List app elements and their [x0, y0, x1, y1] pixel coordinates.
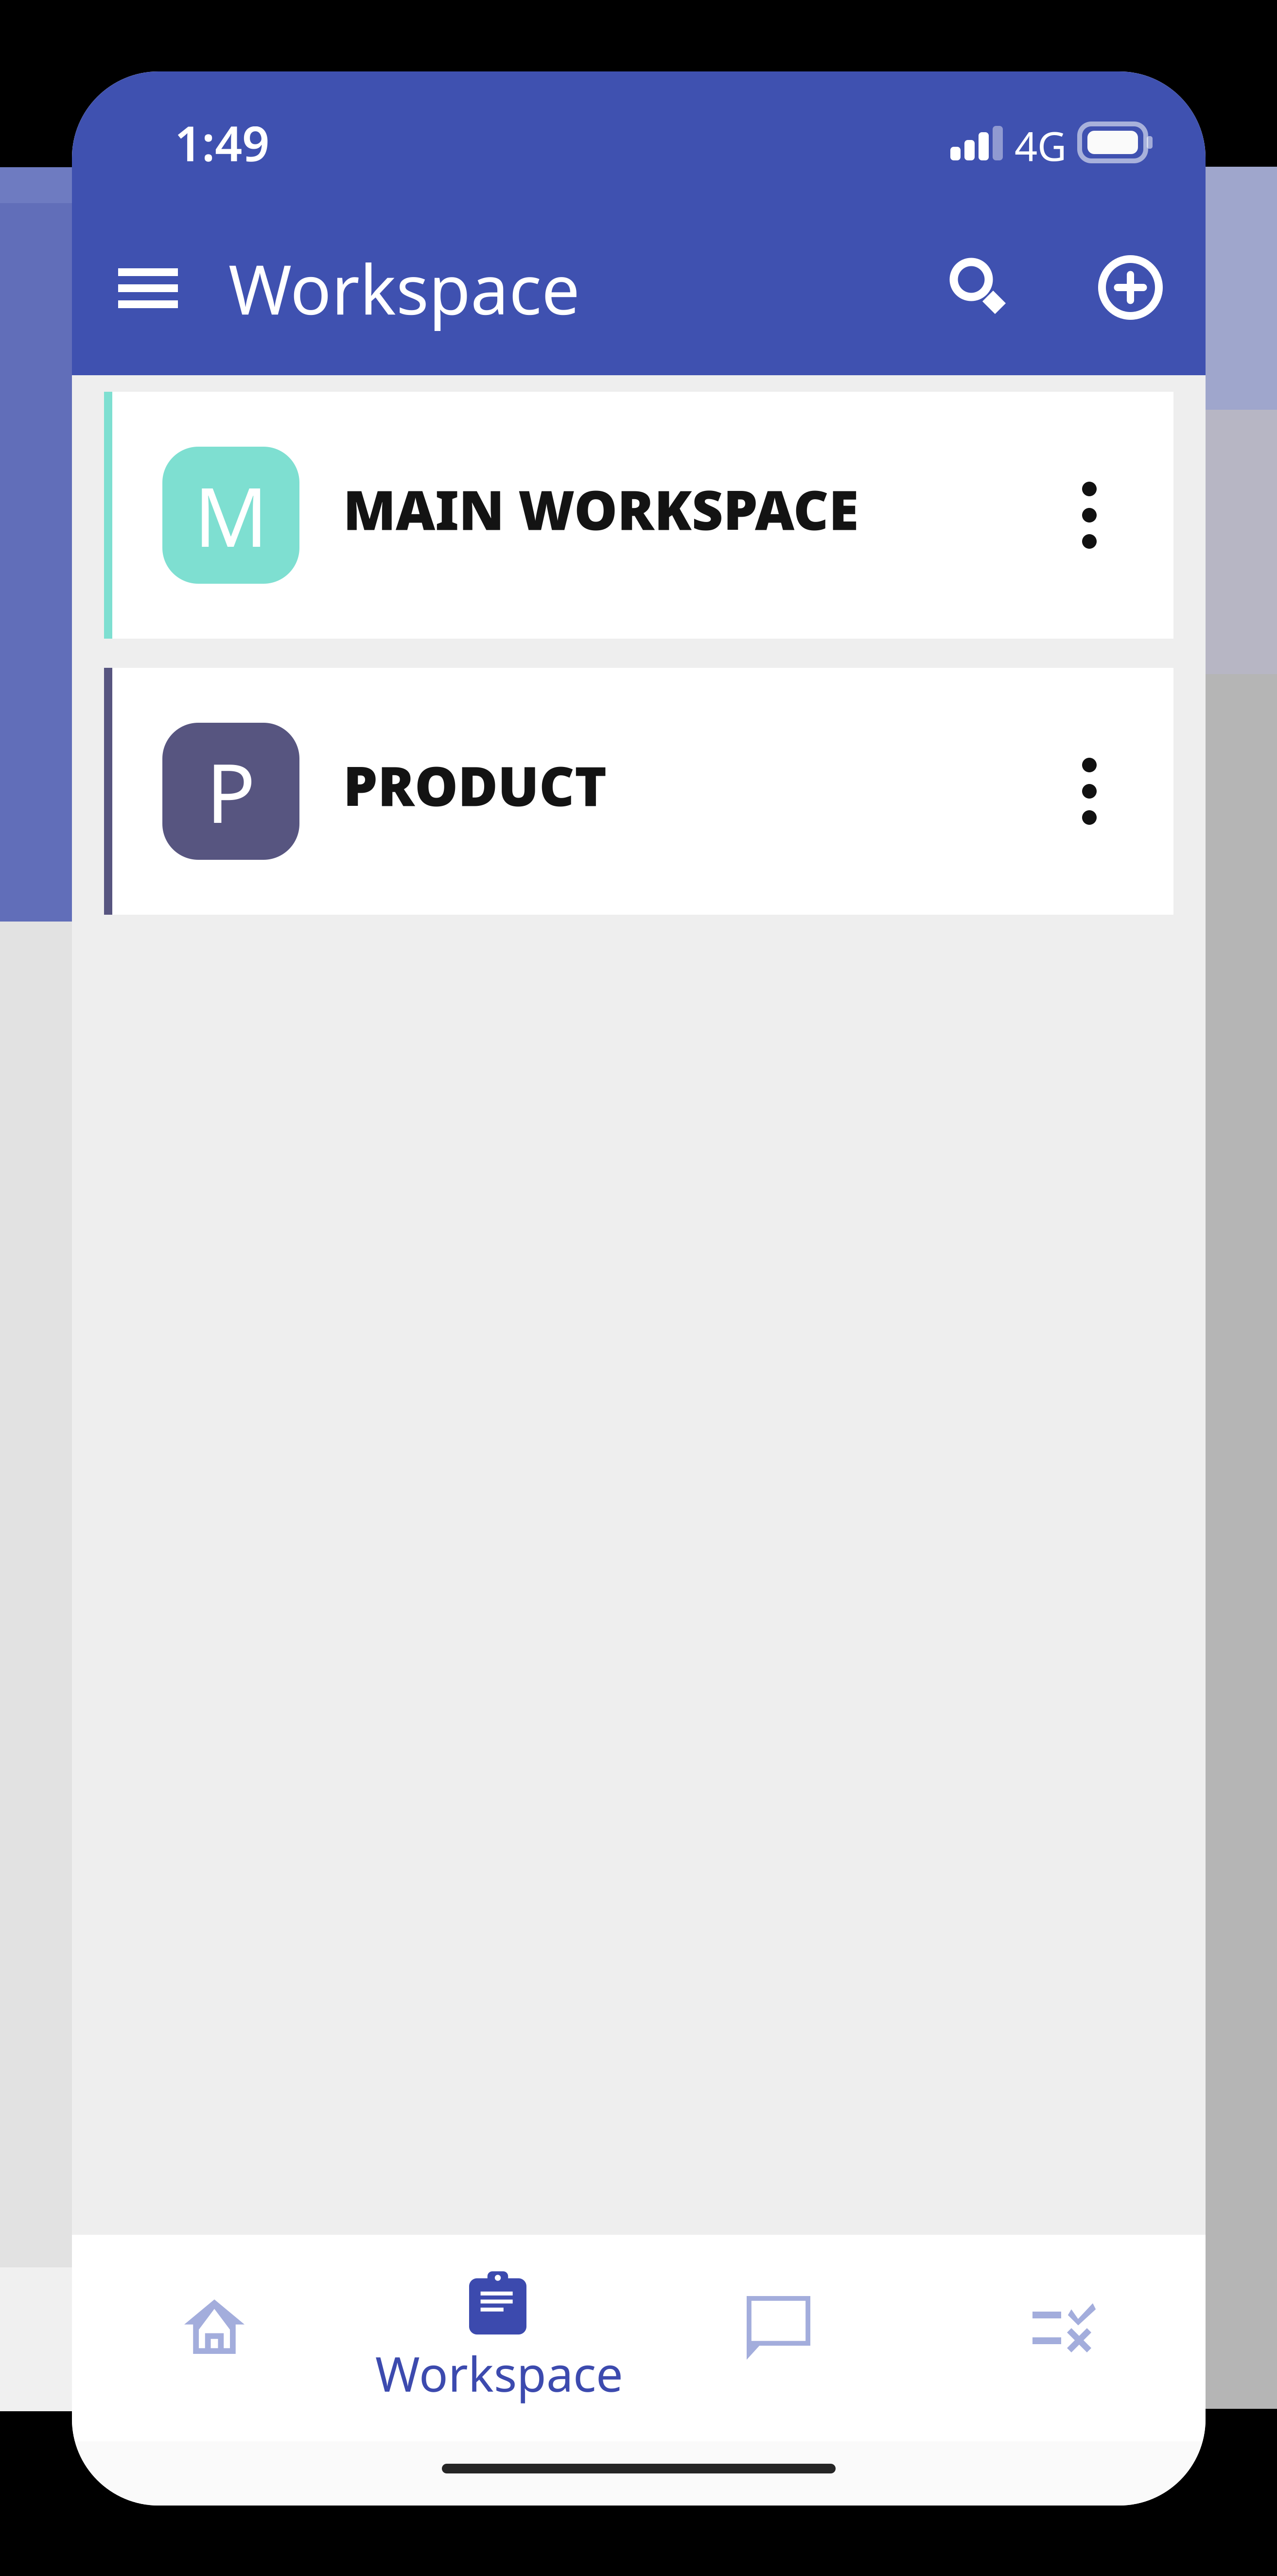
staticText: MAIN WORKSPACE — [343, 473, 858, 545]
button[interactable]: Home — [131, 2256, 298, 2404]
button[interactable]: Menu — [104, 242, 192, 334]
button[interactable]: Tasks — [979, 2256, 1150, 2414]
button[interactable]: More options — [1053, 467, 1126, 564]
staticText: 1:49 — [175, 111, 269, 174]
staticText: Workspace — [228, 243, 580, 333]
button[interactable]: Messages — [695, 2257, 862, 2408]
button[interactable]: Workspace — [228, 242, 580, 334]
button[interactable]: M — [104, 392, 1173, 639]
staticText: PRODUCT — [343, 749, 607, 821]
staticText: Workspace — [375, 2341, 623, 2405]
button[interactable]: Workspace — [356, 2257, 639, 2418]
button[interactable]: Search — [935, 242, 1020, 333]
staticText: P — [206, 737, 256, 846]
staticText: M — [194, 461, 268, 569]
button[interactable]: Add workspace — [1089, 246, 1172, 329]
button[interactable]: P — [104, 668, 1173, 915]
staticText: 4G — [1015, 119, 1067, 172]
button[interactable]: More options — [1053, 743, 1126, 840]
